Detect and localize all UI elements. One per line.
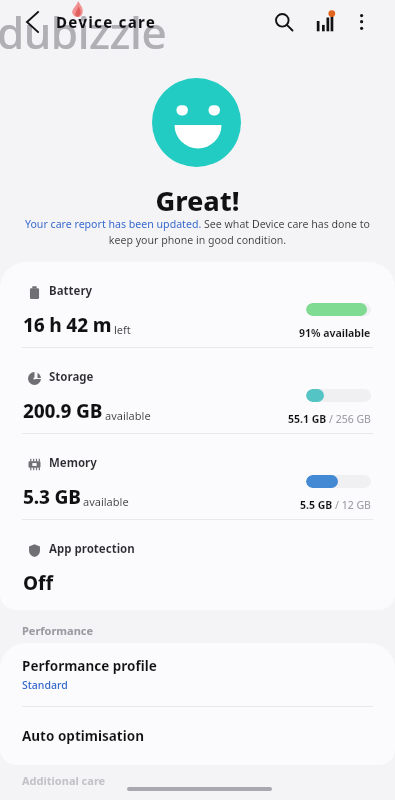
staticText: Great!: [0, 182, 395, 219]
staticText: Auto optimisation: [22, 727, 144, 745]
button[interactable]: Usage statistics: [311, 8, 341, 38]
staticText: Standard: [22, 678, 68, 692]
staticText: 55.1 GB / 256 GB: [288, 412, 371, 426]
staticText: Off: [23, 570, 53, 596]
staticText: dubizzle: [0, 2, 167, 62]
button[interactable]: Battery: [0, 262, 395, 347]
staticText: 91% available: [299, 326, 371, 340]
staticText: available: [105, 408, 151, 423]
staticText: Your care report has been updated. See w…: [18, 217, 377, 247]
button[interactable]: App protection: [0, 520, 395, 605]
button[interactable]: Back: [18, 8, 46, 36]
staticText: Device care: [56, 12, 157, 32]
button[interactable]: More options: [347, 7, 377, 37]
staticText: 5.5 GB / 12 GB: [300, 498, 371, 512]
button[interactable]: Auto optimisation: [0, 707, 395, 765]
button[interactable]: Memory: [0, 434, 395, 519]
staticText: 5.3 GB: [23, 484, 81, 510]
staticText: Performance: [22, 623, 94, 638]
staticText: available: [83, 494, 129, 509]
staticText: Battery: [49, 283, 93, 299]
staticText: App protection: [49, 541, 135, 557]
staticText: 16 h 42 m: [23, 312, 112, 338]
staticText: Memory: [49, 455, 97, 471]
button[interactable]: Search: [268, 6, 298, 36]
staticText: 200.9 GB: [23, 398, 103, 424]
button[interactable]: Storage: [0, 348, 395, 433]
staticText: Performance profile: [22, 657, 157, 675]
button[interactable]: Performance profile: [0, 643, 395, 706]
staticText: Additional care: [22, 773, 106, 788]
staticText: Storage: [49, 369, 94, 385]
staticText: left: [114, 322, 131, 337]
